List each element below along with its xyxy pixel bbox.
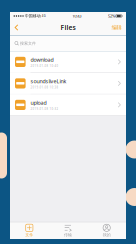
staticText: 52% xyxy=(108,13,115,19)
button[interactable]: 文件 xyxy=(10,222,49,239)
staticText: 中国移动 xyxy=(24,13,41,18)
button[interactable]: 传输 xyxy=(49,222,87,239)
staticText: 编辑 xyxy=(111,24,121,31)
button[interactable]: Search files xyxy=(10,35,126,51)
button[interactable]: 编辑 xyxy=(105,22,126,33)
staticText: Files xyxy=(60,23,75,32)
button[interactable]: download xyxy=(10,51,126,72)
staticText: 2019-01-08 10:40 xyxy=(31,64,59,68)
button[interactable]: upload xyxy=(10,94,126,115)
staticText: 搜索文件 xyxy=(19,41,36,46)
staticText: 文件 xyxy=(25,232,33,237)
staticText: 2019-01-08 10:32 xyxy=(31,107,59,111)
staticText: 我的 xyxy=(103,232,111,237)
staticText: soundsliveLink xyxy=(31,78,67,85)
button[interactable]: soundsliveLink xyxy=(10,73,126,94)
staticText: upload xyxy=(31,99,47,106)
staticText: 4G xyxy=(41,14,46,18)
staticText: download xyxy=(31,56,54,63)
button[interactable]: Back xyxy=(10,22,24,33)
staticText: 2019-01-08 10:38 xyxy=(31,86,59,89)
button[interactable]: 我的 xyxy=(87,222,126,239)
staticText: 传输 xyxy=(64,232,72,237)
staticText: 10:43 xyxy=(72,13,81,19)
